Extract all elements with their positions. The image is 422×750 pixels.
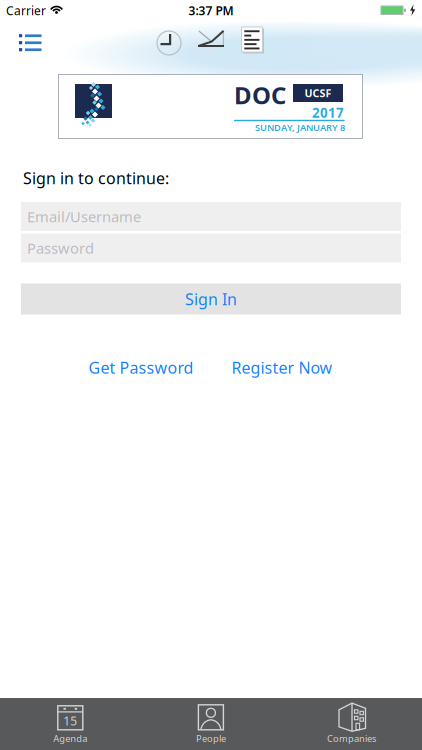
staticText: People <box>196 732 226 745</box>
button[interactable]: Password <box>21 233 401 262</box>
staticText: 3:37 PM <box>188 2 233 18</box>
button[interactable]: Register Now <box>231 357 332 378</box>
button[interactable]: Notes <box>238 26 266 56</box>
button[interactable]: Messages <box>195 28 227 58</box>
staticText: Get Password <box>88 357 193 378</box>
staticText: Carrier <box>6 2 46 18</box>
button[interactable]: Get Password <box>88 357 193 378</box>
staticText: Sign In <box>185 288 237 310</box>
staticText: 15 <box>63 713 77 729</box>
staticText: 2017 <box>312 104 344 121</box>
staticText: Sign in to continue: <box>23 167 169 189</box>
button[interactable]: Sign In <box>21 283 401 314</box>
staticText: Email/Username <box>27 207 141 226</box>
staticText: SUNDAY, JANUARY 8 <box>255 121 345 134</box>
button[interactable]: Email/Username <box>21 202 401 231</box>
staticText: UCSF <box>304 86 331 100</box>
staticText: DOC <box>234 79 286 111</box>
button[interactable]: 15 <box>0 698 141 750</box>
button[interactable]: Menu <box>14 28 48 56</box>
button[interactable]: Companies <box>281 698 422 750</box>
staticText: Agenda <box>53 732 87 745</box>
staticText: Register Now <box>231 357 332 378</box>
staticText: Companies <box>327 732 376 745</box>
button[interactable]: People <box>141 698 281 750</box>
staticText: Password <box>27 238 94 258</box>
button[interactable]: History <box>154 28 184 58</box>
